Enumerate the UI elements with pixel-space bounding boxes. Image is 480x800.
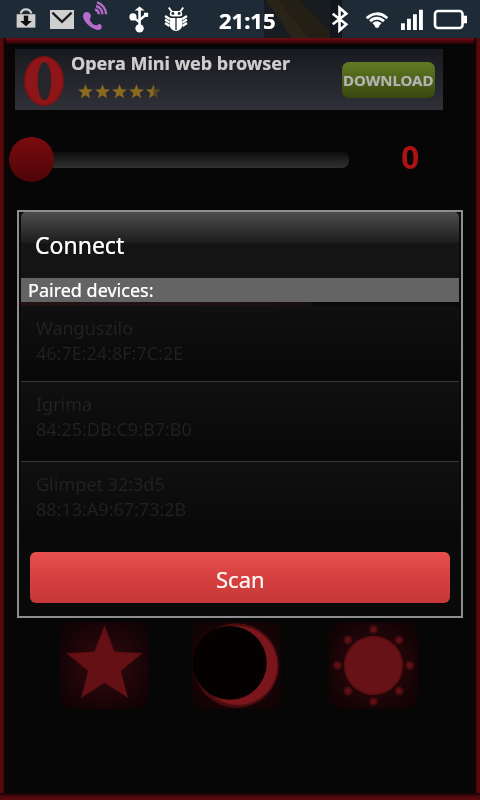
staticText: Wanguszilo — [36, 316, 134, 341]
button[interactable]: DOWNLOAD — [342, 62, 435, 98]
button[interactable]: Igrima — [21, 382, 459, 461]
staticText: 84:25:DB:C9:B7:B0 — [36, 417, 192, 442]
staticText: Opera Mini web browser — [71, 51, 291, 76]
staticText: DOWNLOAD — [343, 70, 434, 90]
staticText: Connect — [35, 229, 125, 260]
button[interactable]: Star shortcut — [60, 622, 149, 709]
button[interactable]: Opera Mini web browser — [15, 49, 443, 110]
button[interactable]: Sun shortcut — [329, 622, 418, 709]
staticText: Glimpet 32:3d5 — [36, 472, 165, 497]
staticText: Paired devices: — [28, 278, 154, 302]
staticText: Scan — [216, 564, 265, 594]
button[interactable]: Wanguszilo — [21, 306, 459, 381]
button[interactable]: Moon shortcut — [192, 622, 281, 709]
button[interactable]: Glimpet 32:3d5 — [21, 462, 459, 542]
staticText: 0 — [401, 135, 420, 179]
button[interactable]: Scan — [30, 552, 450, 603]
staticText: 46:7E:24:8F:7C:2E — [36, 341, 184, 366]
staticText: 88:13:A9:67:73:2B — [36, 497, 187, 522]
button[interactable]: Volume slider — [9, 137, 54, 182]
staticText: Igrima — [36, 392, 93, 417]
staticText: 21:15 — [219, 5, 276, 35]
